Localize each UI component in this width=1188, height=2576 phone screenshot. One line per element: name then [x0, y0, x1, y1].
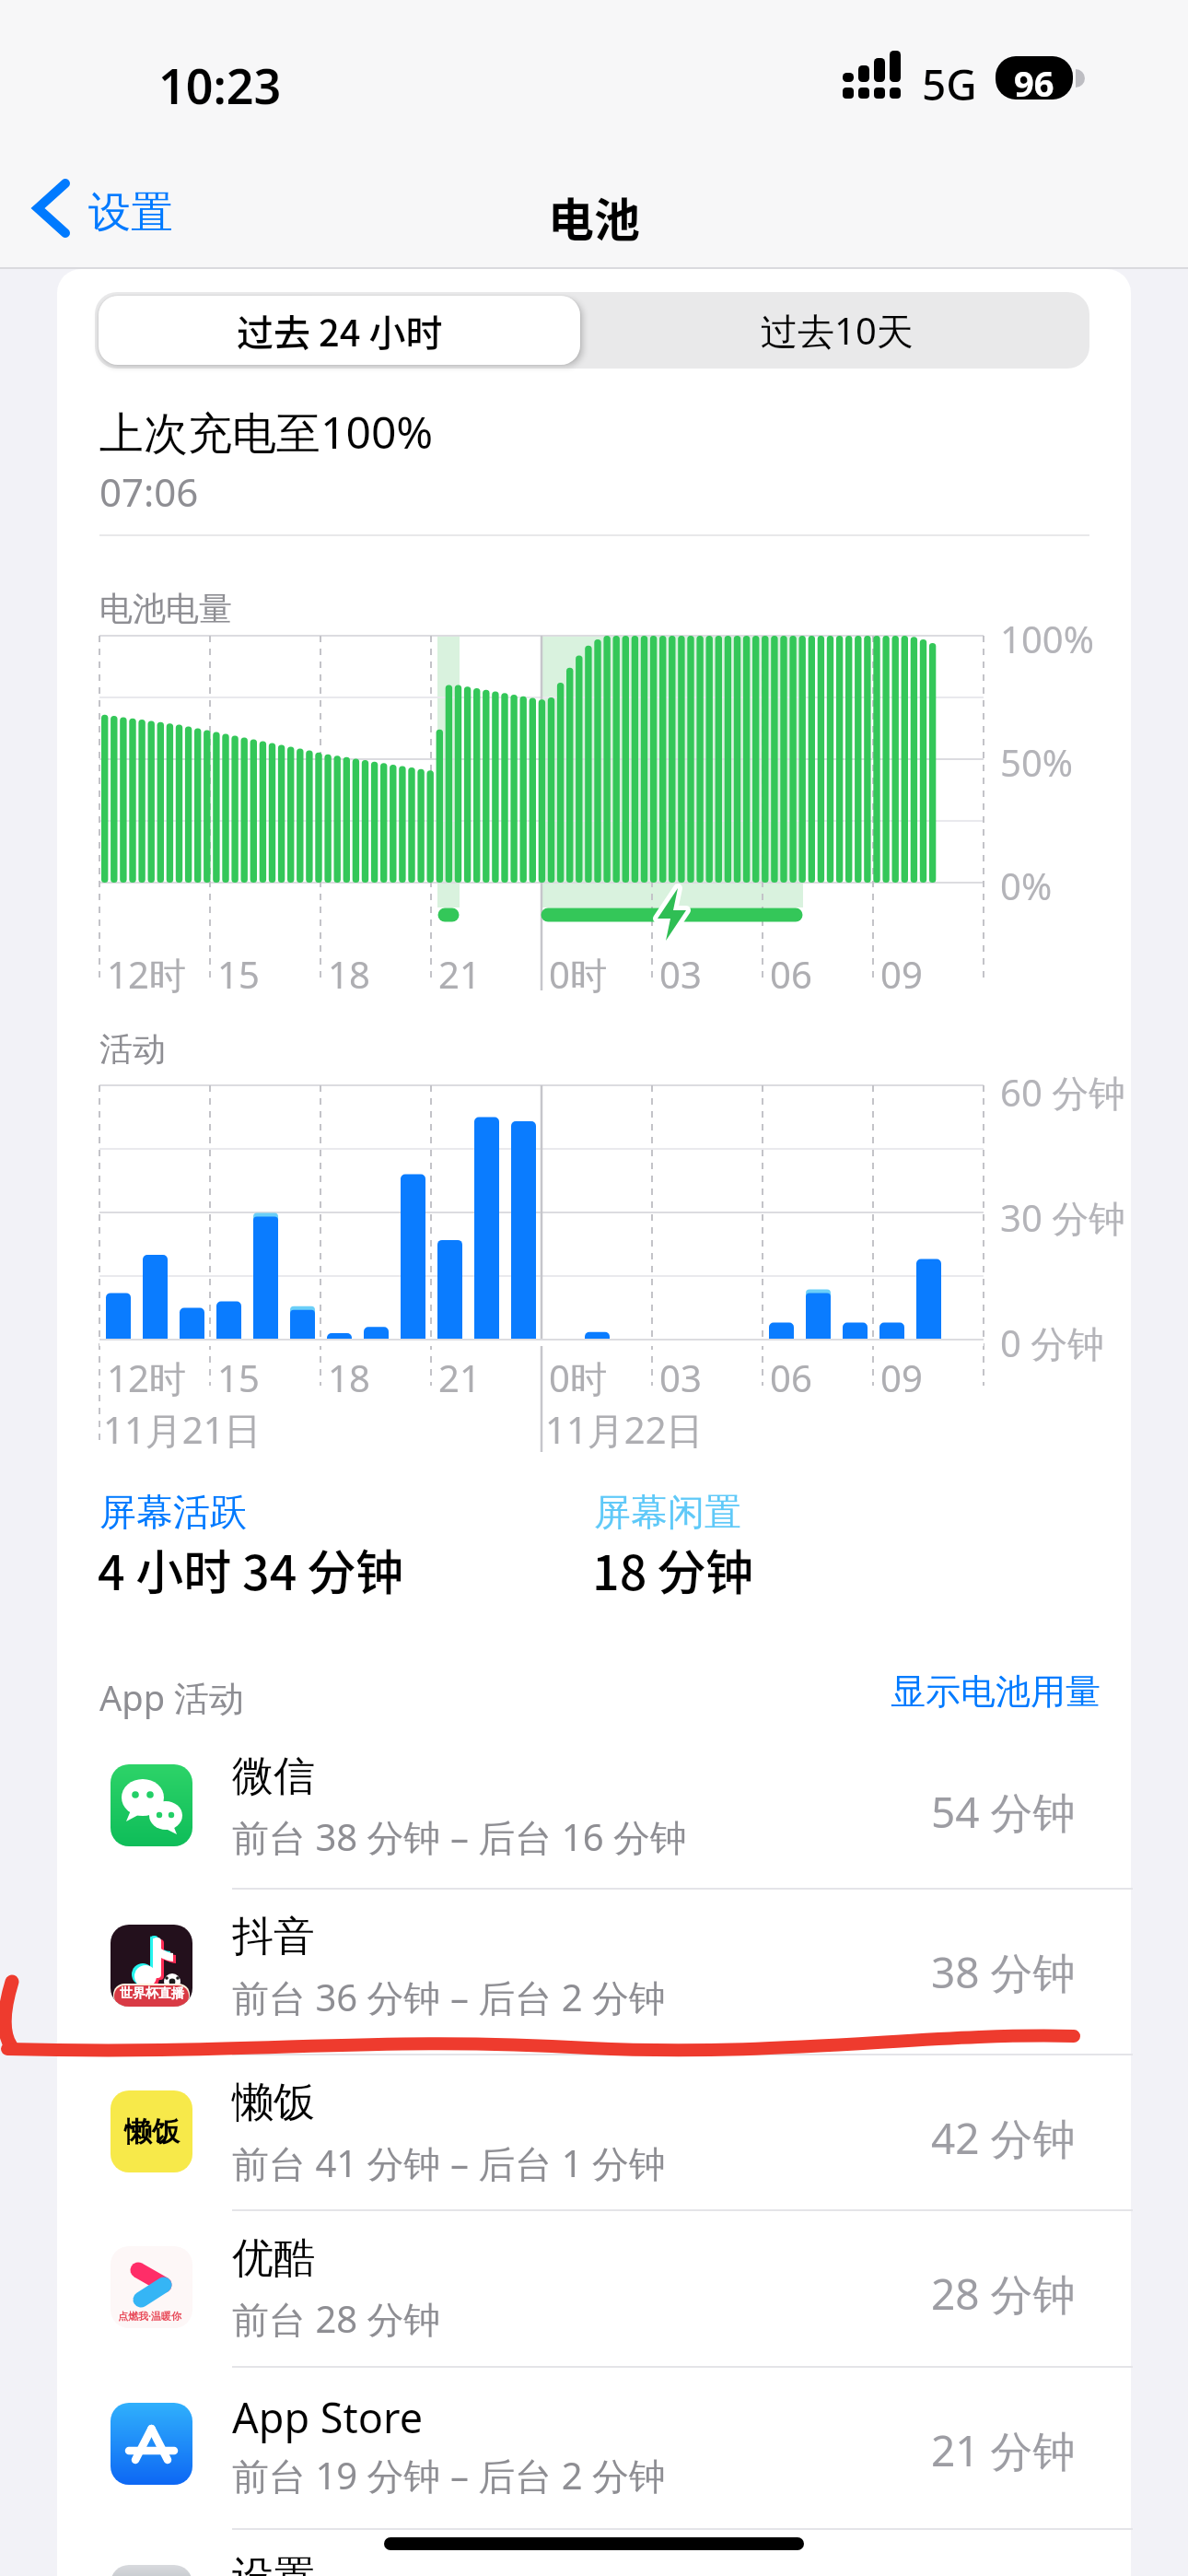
- staticText: 10:23: [158, 53, 282, 118]
- staticText: 电池电量: [99, 588, 232, 629]
- staticText: 38 分钟: [931, 1943, 1076, 2001]
- staticText: App 活动: [99, 1673, 244, 1721]
- staticText: 15: [217, 949, 260, 999]
- staticText: 15: [217, 1352, 260, 1402]
- staticText: 过去10天: [761, 305, 914, 356]
- staticText: 微信: [232, 1751, 315, 1803]
- staticText: 12时: [107, 1352, 186, 1403]
- staticText: 21: [438, 1352, 481, 1402]
- button[interactable]: App Store: [57, 2366, 1131, 2528]
- button[interactable]: 世界杯直播: [57, 1888, 1131, 2054]
- staticText: 21 分钟: [931, 2421, 1076, 2479]
- staticText: 09: [880, 949, 923, 999]
- staticText: 30 分钟: [1000, 1192, 1126, 1243]
- staticText: 11月21日: [103, 1404, 262, 1455]
- staticText: 96: [1014, 59, 1054, 107]
- staticText: 07:06: [99, 465, 199, 518]
- staticText: 优酷: [232, 2232, 315, 2285]
- staticText: 06: [770, 949, 812, 999]
- staticText: 世界杯直播: [120, 1985, 184, 2002]
- button[interactable]: 懒饭: [57, 2054, 1131, 2209]
- button[interactable]: 过去 24 小时: [99, 296, 580, 365]
- button[interactable]: 设置: [57, 2528, 1131, 2576]
- staticText: 前台 19 分钟 – 后台 2 分钟: [232, 2450, 667, 2500]
- staticText: 42 分钟: [931, 2109, 1076, 2167]
- staticText: 过去 24 小时: [237, 304, 443, 357]
- staticText: 0时: [549, 1352, 607, 1403]
- button[interactable]: 过去10天: [584, 296, 1089, 365]
- staticText: 前台 28 分钟: [232, 2293, 441, 2344]
- staticText: 28 分钟: [931, 2265, 1076, 2323]
- staticText: 抖音: [232, 1911, 315, 1963]
- staticText: 18: [328, 1352, 370, 1402]
- staticText: 前台 41 分钟 – 后台 1 分钟: [232, 2137, 667, 2188]
- staticText: 50%: [1000, 737, 1073, 787]
- staticText: 06: [770, 1352, 812, 1402]
- staticText: 21: [438, 949, 481, 999]
- button[interactable]: 显示电池用量: [640, 1669, 1101, 1717]
- staticText: 设置: [88, 186, 173, 240]
- staticText: 屏幕活跃: [99, 1489, 247, 1535]
- staticText: 03: [659, 1352, 702, 1402]
- staticText: 电池: [548, 183, 640, 250]
- staticText: 09: [880, 1352, 923, 1402]
- button[interactable]: 点燃我·温暖你: [57, 2209, 1131, 2366]
- staticText: App Store: [232, 2389, 424, 2445]
- staticText: 懒饭: [232, 2077, 315, 2129]
- staticText: 100%: [1000, 614, 1094, 663]
- staticText: 点燃我·温暖你: [118, 2309, 182, 2323]
- staticText: 11月22日: [545, 1404, 704, 1455]
- staticText: 0%: [1000, 861, 1053, 910]
- staticText: 前台 38 分钟 – 后台 16 分钟: [232, 1811, 687, 1862]
- staticText: 18 分钟: [592, 1535, 753, 1604]
- staticText: 上次充电至100%: [99, 402, 434, 463]
- staticText: 懒饭: [124, 2114, 180, 2149]
- staticText: 0 分钟: [1000, 1317, 1105, 1368]
- staticText: 设置: [232, 2551, 315, 2576]
- button[interactable]: 设置: [24, 164, 227, 252]
- staticText: 0时: [549, 949, 607, 1000]
- staticText: 54 分钟: [931, 1783, 1076, 1841]
- staticText: 03: [659, 949, 702, 999]
- staticText: 60 分钟: [1000, 1067, 1126, 1118]
- staticText: 4 小时 34 分钟: [98, 1535, 404, 1604]
- staticText: 前台 36 分钟 – 后台 2 分钟: [232, 1972, 667, 2022]
- staticText: 显示电池用量: [891, 1669, 1101, 1714]
- staticText: 18: [328, 949, 370, 999]
- staticText: 活动: [99, 1028, 166, 1070]
- button[interactable]: 微信: [57, 1727, 1131, 1888]
- staticText: 5G: [922, 55, 977, 113]
- staticText: 12时: [107, 949, 186, 1000]
- staticText: 屏幕闲置: [594, 1489, 741, 1535]
